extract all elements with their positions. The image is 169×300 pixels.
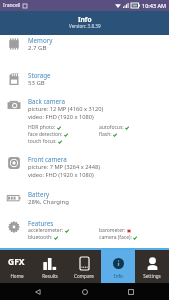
staticText: Back camera xyxy=(28,97,65,105)
staticText: camera (face): xyxy=(99,234,132,241)
button[interactable]: Memory xyxy=(0,36,169,52)
button[interactable]: Recents xyxy=(123,284,139,300)
staticText: bluetooth: xyxy=(28,234,53,241)
staticText: picture: 12 MP (4160 x 3120) xyxy=(28,105,104,113)
button[interactable]: Home xyxy=(77,284,93,300)
button[interactable]: Battery xyxy=(0,190,169,206)
button[interactable]: Compare xyxy=(67,250,101,283)
staticText: GFX xyxy=(8,256,25,268)
button[interactable]: Front camera xyxy=(0,155,169,179)
staticText: video: FHD (1920 x 1080) xyxy=(28,113,94,121)
staticText: Info xyxy=(114,273,123,279)
staticText: Home xyxy=(10,273,24,279)
staticText: accelerometer: xyxy=(28,227,64,234)
staticText: video: FHD (1920 x 1080) xyxy=(28,171,94,179)
button[interactable]: Storage xyxy=(0,71,169,87)
staticText: Memory xyxy=(28,36,53,44)
button[interactable]: Back camera xyxy=(0,97,169,145)
staticText: face detection: xyxy=(28,131,63,138)
staticText: Version: 3.8.39 xyxy=(69,23,101,29)
staticText: 10:43 AM xyxy=(142,2,166,9)
button[interactable]: Settings xyxy=(135,250,169,283)
staticText: Features xyxy=(28,219,54,227)
staticText: Results xyxy=(42,273,58,279)
button[interactable]: Back xyxy=(30,284,46,300)
staticText: touch focus: xyxy=(28,138,57,145)
staticText: Settings xyxy=(143,273,161,279)
staticText: Battery xyxy=(28,190,50,198)
staticText: 53 GB xyxy=(28,79,45,87)
staticText: 28%, Charging xyxy=(28,198,69,206)
staticText: flash: xyxy=(99,131,112,138)
button[interactable]: Results xyxy=(33,250,67,283)
staticText: Storage xyxy=(28,71,51,79)
staticText: autofocus: xyxy=(99,124,124,131)
staticText: 2.7 GB xyxy=(28,44,47,52)
staticText: Compare xyxy=(74,273,94,279)
staticText: picture: 7 MP (3264 x 2448) xyxy=(28,163,100,171)
staticText: barometer: xyxy=(99,227,126,234)
staticText: HDR photo: xyxy=(28,124,56,131)
staticText: Irancell xyxy=(3,2,21,9)
button[interactable]: Features xyxy=(0,219,169,241)
staticText: Info xyxy=(78,15,92,24)
staticText: Front camera xyxy=(28,155,67,163)
button[interactable]: GFX xyxy=(0,250,33,283)
button[interactable]: Info xyxy=(101,250,135,283)
